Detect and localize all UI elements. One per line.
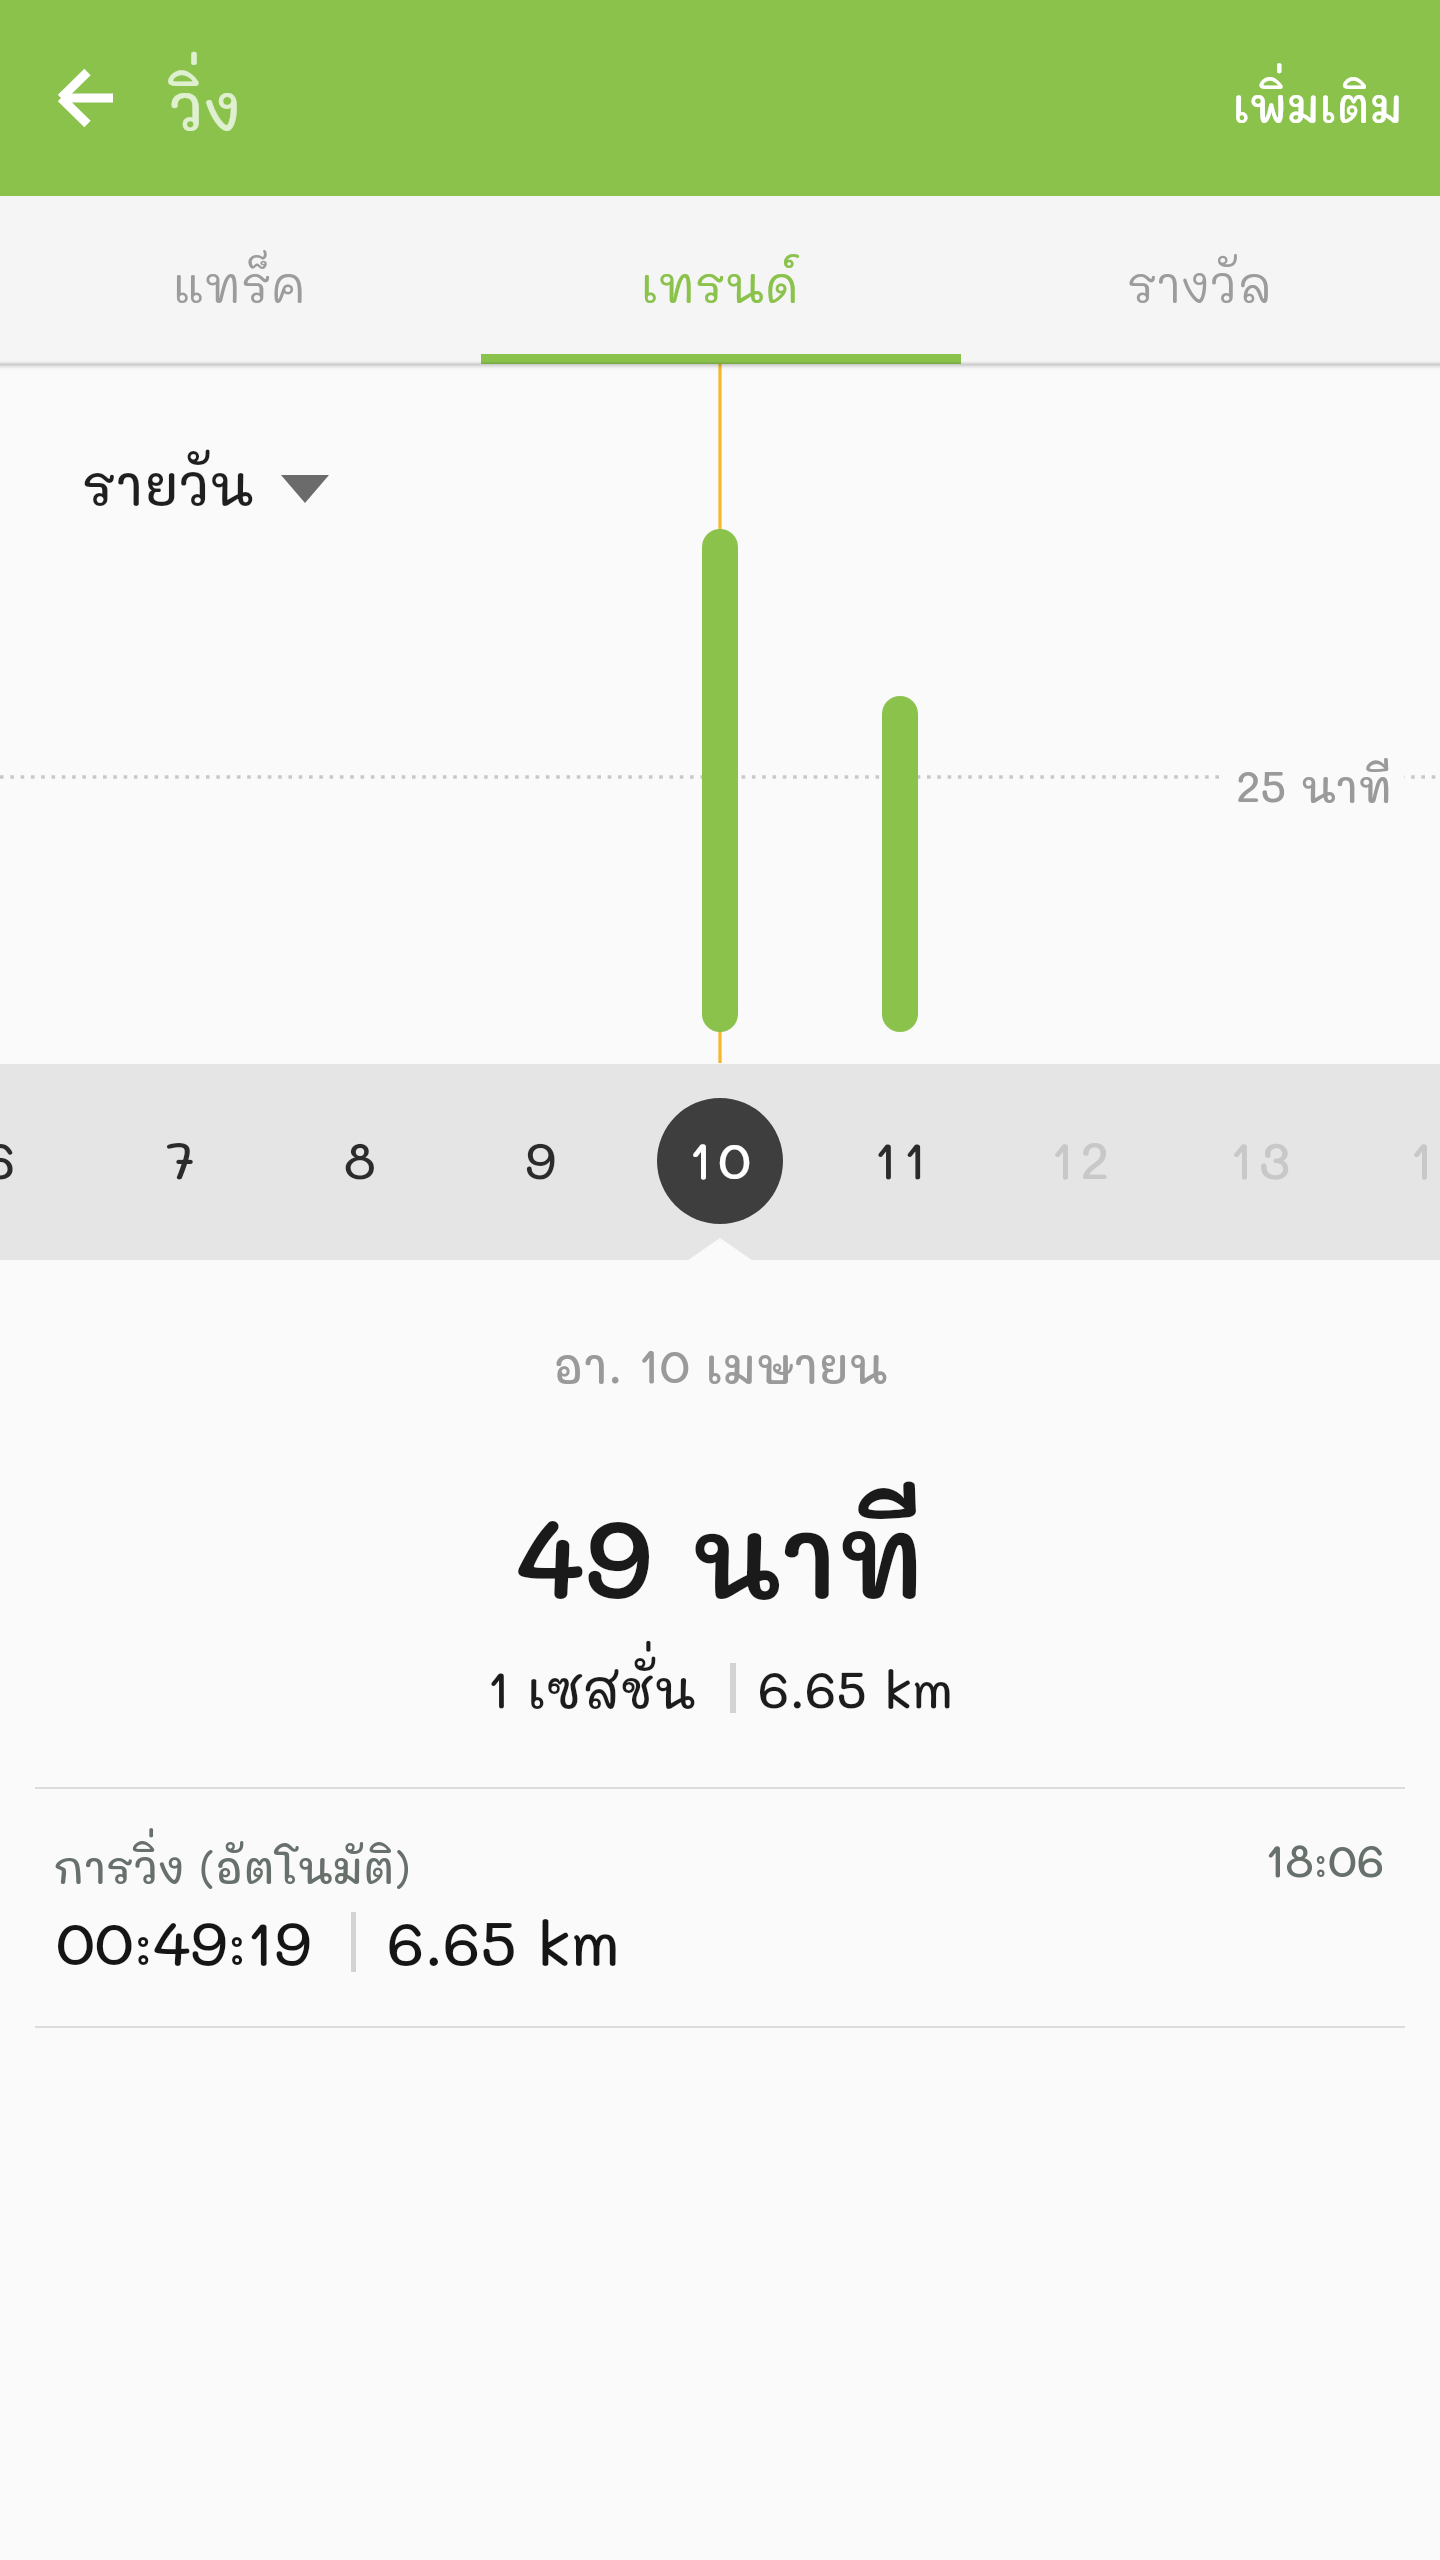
button[interactable]: 7	[90, 1064, 270, 1260]
button[interactable]: 6	[0, 1064, 90, 1260]
staticText: รายวัน	[82, 448, 254, 519]
staticText: อา. 10 เมษายน	[0, 1334, 1440, 1396]
button[interactable]: 11	[810, 1064, 990, 1260]
staticText: 1 เซสชั่น	[487, 1654, 696, 1722]
staticText: วิ่ง	[169, 66, 242, 147]
button[interactable]: Back	[0, 0, 170, 196]
staticText: 8	[344, 1125, 376, 1193]
button[interactable]: 13	[1170, 1064, 1350, 1260]
staticText: 18:06	[1265, 1830, 1385, 1890]
staticText: 00:49:19	[56, 1901, 312, 1982]
button[interactable]: 12	[990, 1064, 1170, 1260]
staticText: 12	[1051, 1125, 1116, 1193]
button[interactable]: 14	[1350, 1064, 1440, 1260]
staticText: 49 นาที	[0, 1481, 1440, 1627]
button[interactable]: การวิ่ง (อัตโนมัติ)	[0, 1789, 1440, 2026]
staticText: เทรนด์	[641, 252, 800, 316]
button[interactable]: เทรนด์	[480, 196, 960, 364]
staticText: 11	[874, 1125, 933, 1193]
staticText: รางวัล	[1127, 252, 1273, 316]
staticText: 25 นาที	[1236, 757, 1392, 814]
staticText: 10	[689, 1125, 757, 1193]
staticText: 6.65 km	[758, 1654, 954, 1722]
staticText: 6	[0, 1125, 16, 1193]
staticText: 9	[525, 1125, 556, 1193]
staticText: การวิ่ง (อัตโนมัติ)	[53, 1838, 411, 1895]
staticText: 6.65 km	[387, 1901, 620, 1982]
button[interactable]: 8	[270, 1064, 450, 1260]
button[interactable]: แทร็ค	[0, 196, 480, 364]
staticText: แทร็ค	[173, 252, 307, 316]
staticText: 7	[166, 1125, 195, 1193]
button[interactable]: รางวัล	[960, 196, 1440, 364]
button[interactable]: 10	[630, 1064, 810, 1260]
staticText: 14	[1410, 1125, 1440, 1193]
button[interactable]: 9	[450, 1064, 630, 1260]
button[interactable]: เพิ่มเติม	[1191, 33, 1440, 164]
button[interactable]: รายวัน	[66, 438, 345, 529]
staticText: เพิ่มเติม	[1233, 74, 1403, 135]
staticText: 13	[1230, 1125, 1296, 1193]
